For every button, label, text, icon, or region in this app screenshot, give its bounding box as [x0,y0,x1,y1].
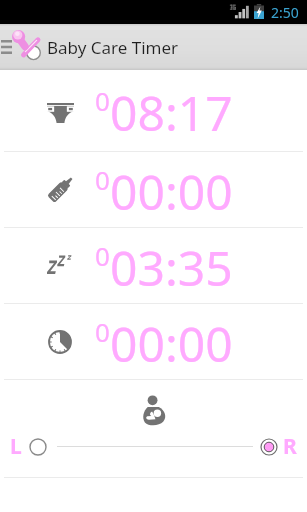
button[interactable]: Menu [0,24,13,70]
staticText: 00:00 [110,311,233,376]
button[interactable]: 0 [0,304,307,379]
staticText: 0 [95,238,110,273]
button[interactable]: Breastfeeding [0,380,307,432]
button[interactable]: 0 [0,70,307,151]
staticText: 0 [95,83,110,118]
button[interactable]: 0 [0,152,307,227]
button[interactable]: Right side [260,438,278,456]
staticText: 0 [95,162,110,197]
staticText: 0 [95,314,110,349]
staticText: L [10,432,22,461]
staticText: R [283,432,297,461]
staticText: Baby Care Timer [47,36,179,59]
button[interactable]: Left side [29,438,47,456]
staticText: 03:35 [110,235,233,300]
button[interactable]: 0 [0,228,307,303]
staticText: 2:50 [271,3,299,22]
button[interactable]: Menu [0,24,307,70]
staticText: 00:00 [110,159,233,224]
staticText: 08:17 [110,80,233,145]
